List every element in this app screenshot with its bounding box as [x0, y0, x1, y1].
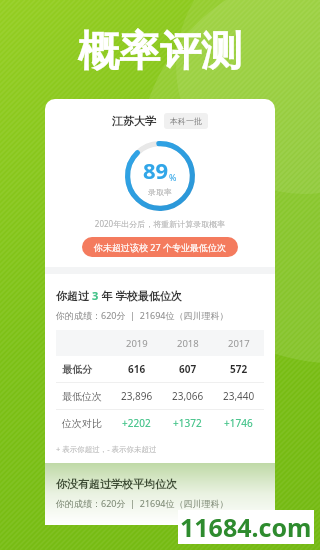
staticText: 你的成绩：620分 | 21694位（四川理科） — [56, 497, 229, 509]
staticText: +1372 — [173, 416, 202, 430]
staticText: 年 学校最低位次 — [99, 288, 182, 303]
staticText: 2017 — [228, 337, 250, 350]
staticText: 23,896 — [121, 389, 153, 403]
staticText: 2018 — [177, 337, 199, 350]
staticText: 23,440 — [223, 389, 255, 403]
staticText: 江苏大学 — [112, 114, 156, 128]
staticText: 你没有超过学校平均位次 — [56, 477, 177, 491]
staticText: 最低分 — [62, 363, 92, 376]
staticText: 录取率 — [148, 187, 172, 197]
staticText: 2020年出分后，将重新计算录取概率 — [45, 218, 275, 229]
staticText: % — [169, 171, 177, 183]
staticText: +2202 — [122, 416, 151, 430]
staticText: + 表示你超过，- 表示你未超过 — [56, 444, 157, 454]
staticText: 23,066 — [172, 389, 204, 403]
staticText: 2019 — [126, 337, 148, 350]
staticText: 607 — [179, 362, 197, 376]
staticText: +1746 — [224, 416, 253, 430]
staticText: 位次对比 — [62, 417, 102, 430]
staticText: 最低位次 — [62, 390, 102, 403]
staticText: 89 — [143, 155, 169, 185]
staticText: 你超过 — [56, 288, 92, 303]
staticText: 572 — [230, 362, 248, 376]
button[interactable]: 本科一批 — [164, 113, 208, 129]
staticText: 你未超过该校 27 个专业最低位次 — [94, 241, 226, 253]
button[interactable]: 你未超过该校 27 个专业最低位次 — [82, 237, 238, 257]
staticText: 11684.com — [180, 510, 312, 544]
staticText: 你的成绩：620分 | 21694位（四川理科） — [56, 309, 229, 321]
staticText: 3 — [92, 288, 99, 303]
staticText: 616 — [128, 362, 146, 376]
staticText: 本科一批 — [170, 116, 202, 126]
staticText: 概率评测 — [0, 26, 320, 78]
